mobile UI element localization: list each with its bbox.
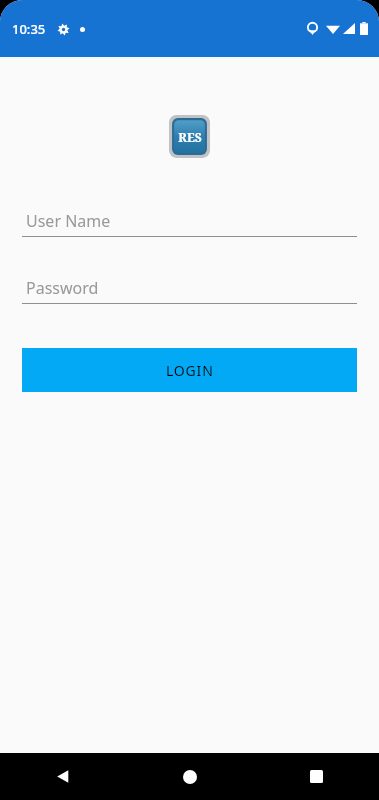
button[interactable]: RES [169,115,210,158]
staticText: 10:35 [12,20,46,38]
button[interactable]: Back [0,753,127,800]
staticText: User Name [26,210,111,232]
button[interactable]: Recent apps [253,753,379,800]
button[interactable]: User Name [22,206,357,237]
staticText: LOGIN [166,361,214,380]
staticText: RES [178,129,202,145]
button[interactable]: Password [22,273,357,304]
staticText: Password [26,277,99,299]
button[interactable]: Home [127,753,253,800]
button[interactable]: LOGIN [22,348,357,392]
